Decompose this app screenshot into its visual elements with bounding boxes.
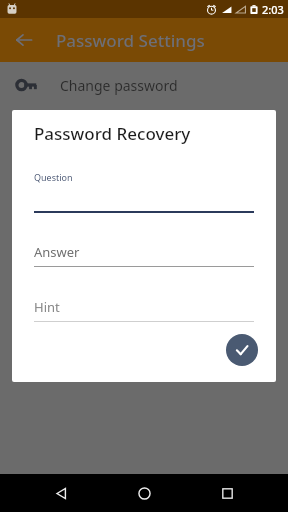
staticText: Change password bbox=[60, 76, 178, 95]
staticText: Password Recovery bbox=[34, 122, 191, 145]
button[interactable]: Hint bbox=[34, 298, 254, 322]
staticText: 2:03 bbox=[262, 2, 284, 17]
button[interactable]: Back bbox=[39, 474, 83, 512]
staticText: Password Settings bbox=[56, 29, 205, 52]
button[interactable]: Recent apps bbox=[205, 474, 249, 512]
staticText: Answer bbox=[34, 243, 80, 261]
button[interactable]: Change password bbox=[0, 62, 288, 108]
staticText: Question bbox=[34, 171, 73, 183]
button[interactable]: Question bbox=[34, 171, 254, 213]
button[interactable]: Home bbox=[122, 474, 166, 512]
button[interactable]: Answer bbox=[34, 243, 254, 267]
button[interactable]: Confirm bbox=[226, 334, 258, 366]
staticText: Hint bbox=[34, 298, 60, 316]
button[interactable]: Back bbox=[6, 22, 42, 58]
